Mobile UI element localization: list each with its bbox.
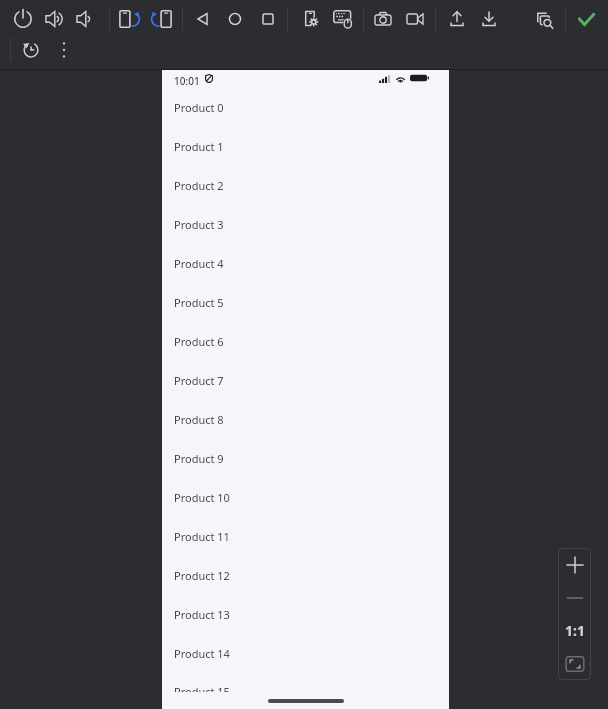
button[interactable]: More [50, 36, 78, 64]
staticText: Product 4 [174, 256, 224, 271]
button[interactable]: Fit to screen [558, 647, 591, 680]
staticText: Product 15 [174, 684, 230, 699]
staticText: Product 11 [174, 529, 230, 544]
staticText: Product 9 [174, 451, 224, 466]
button[interactable]: Back [189, 5, 217, 33]
button[interactable]: Product 12 [162, 556, 449, 595]
button[interactable]: Product 8 [162, 400, 449, 439]
button[interactable]: Product 11 [162, 517, 449, 556]
button[interactable]: Upload [443, 5, 471, 33]
staticText: Product 12 [174, 568, 230, 583]
staticText: 1:1 [565, 621, 585, 640]
button[interactable]: Actual size [558, 614, 591, 647]
button[interactable]: Power [9, 5, 37, 33]
button[interactable]: Screenshot [369, 5, 397, 33]
button[interactable]: Product 14 [162, 634, 449, 673]
button[interactable]: Product 10 [162, 478, 449, 517]
button[interactable]: Product 6 [162, 322, 449, 361]
staticText: Product 1 [174, 139, 224, 154]
button[interactable]: Record screen [401, 5, 429, 33]
button[interactable]: Product 0 [162, 88, 449, 127]
button[interactable]: Download [475, 5, 503, 33]
staticText: Product 6 [174, 334, 224, 349]
button[interactable]: Volume down [71, 5, 99, 33]
staticText: Product 8 [174, 412, 224, 427]
staticText: Product 10 [174, 490, 230, 505]
button[interactable]: Keyboard and mouse [328, 5, 356, 33]
button[interactable]: Volume up [40, 5, 68, 33]
button[interactable]: History [17, 36, 45, 64]
staticText: Product 2 [174, 178, 224, 193]
button[interactable]: Rotate right [148, 5, 176, 33]
button[interactable]: Product 7 [162, 361, 449, 400]
staticText: 10:01 [174, 74, 200, 88]
button[interactable]: Rotate left [115, 5, 143, 33]
button[interactable]: Zoom out [558, 581, 591, 614]
staticText: Product 14 [174, 646, 230, 661]
button[interactable]: Inspect [530, 5, 558, 33]
button[interactable]: Overview [254, 5, 282, 33]
button[interactable]: Product 3 [162, 205, 449, 244]
button[interactable]: Product 15 [162, 673, 449, 709]
button[interactable]: Done [573, 5, 601, 33]
button[interactable]: Product 5 [162, 283, 449, 322]
staticText: Product 3 [174, 217, 224, 232]
button[interactable]: Product 4 [162, 244, 449, 283]
button[interactable]: Device settings [297, 5, 325, 33]
staticText: Product 13 [174, 607, 230, 622]
button[interactable]: Product 1 [162, 127, 449, 166]
staticText: Product 0 [174, 100, 224, 115]
button[interactable]: Product 13 [162, 595, 449, 634]
button[interactable]: Zoom in [558, 548, 591, 581]
button[interactable]: Product 2 [162, 166, 449, 205]
button[interactable]: Product 9 [162, 439, 449, 478]
button[interactable]: Home [221, 5, 249, 33]
staticText: Product 5 [174, 295, 224, 310]
staticText: Product 7 [174, 373, 224, 388]
